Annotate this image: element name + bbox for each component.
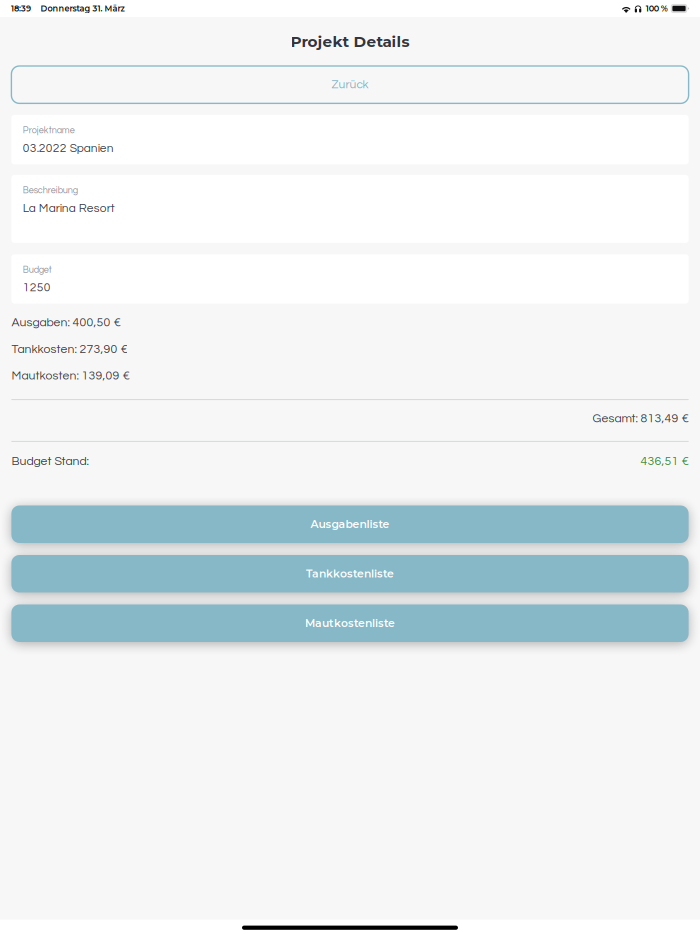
staticText: 100 % (646, 3, 668, 13)
staticText: Mautkostenliste (305, 617, 395, 630)
button[interactable]: Tankkostenliste (11, 555, 689, 592)
staticText: Tankkosten: 273,90 € (11, 343, 127, 355)
staticText: Ausgabenliste (310, 518, 389, 531)
staticText: Donnerstag 31. März (41, 3, 125, 13)
staticText: Budget Stand: (11, 455, 88, 468)
button[interactable]: Ausgabenliste (11, 505, 689, 543)
staticText: Ausgaben: 400,50 € (11, 316, 120, 329)
staticText: Projektname (23, 126, 75, 135)
staticText: 436,51 € (641, 455, 689, 468)
staticText: Budget (23, 265, 52, 275)
staticText: 03.2022 Spanien (23, 142, 114, 154)
staticText: Projekt Details (290, 32, 409, 51)
staticText: 18:39 (11, 3, 31, 13)
staticText: Tankkostenliste (306, 567, 394, 580)
staticText: La Marina Resort (23, 202, 115, 214)
staticText: 1250 (23, 282, 51, 294)
staticText: Gesamt: 813,49 € (593, 412, 689, 425)
staticText: Beschreibung (23, 186, 78, 195)
button[interactable]: Mautkostenliste (11, 604, 689, 642)
button[interactable]: Zurück (11, 66, 689, 103)
staticText: Mautkosten: 139,09 € (11, 370, 129, 382)
staticText: Zurück (331, 79, 368, 91)
